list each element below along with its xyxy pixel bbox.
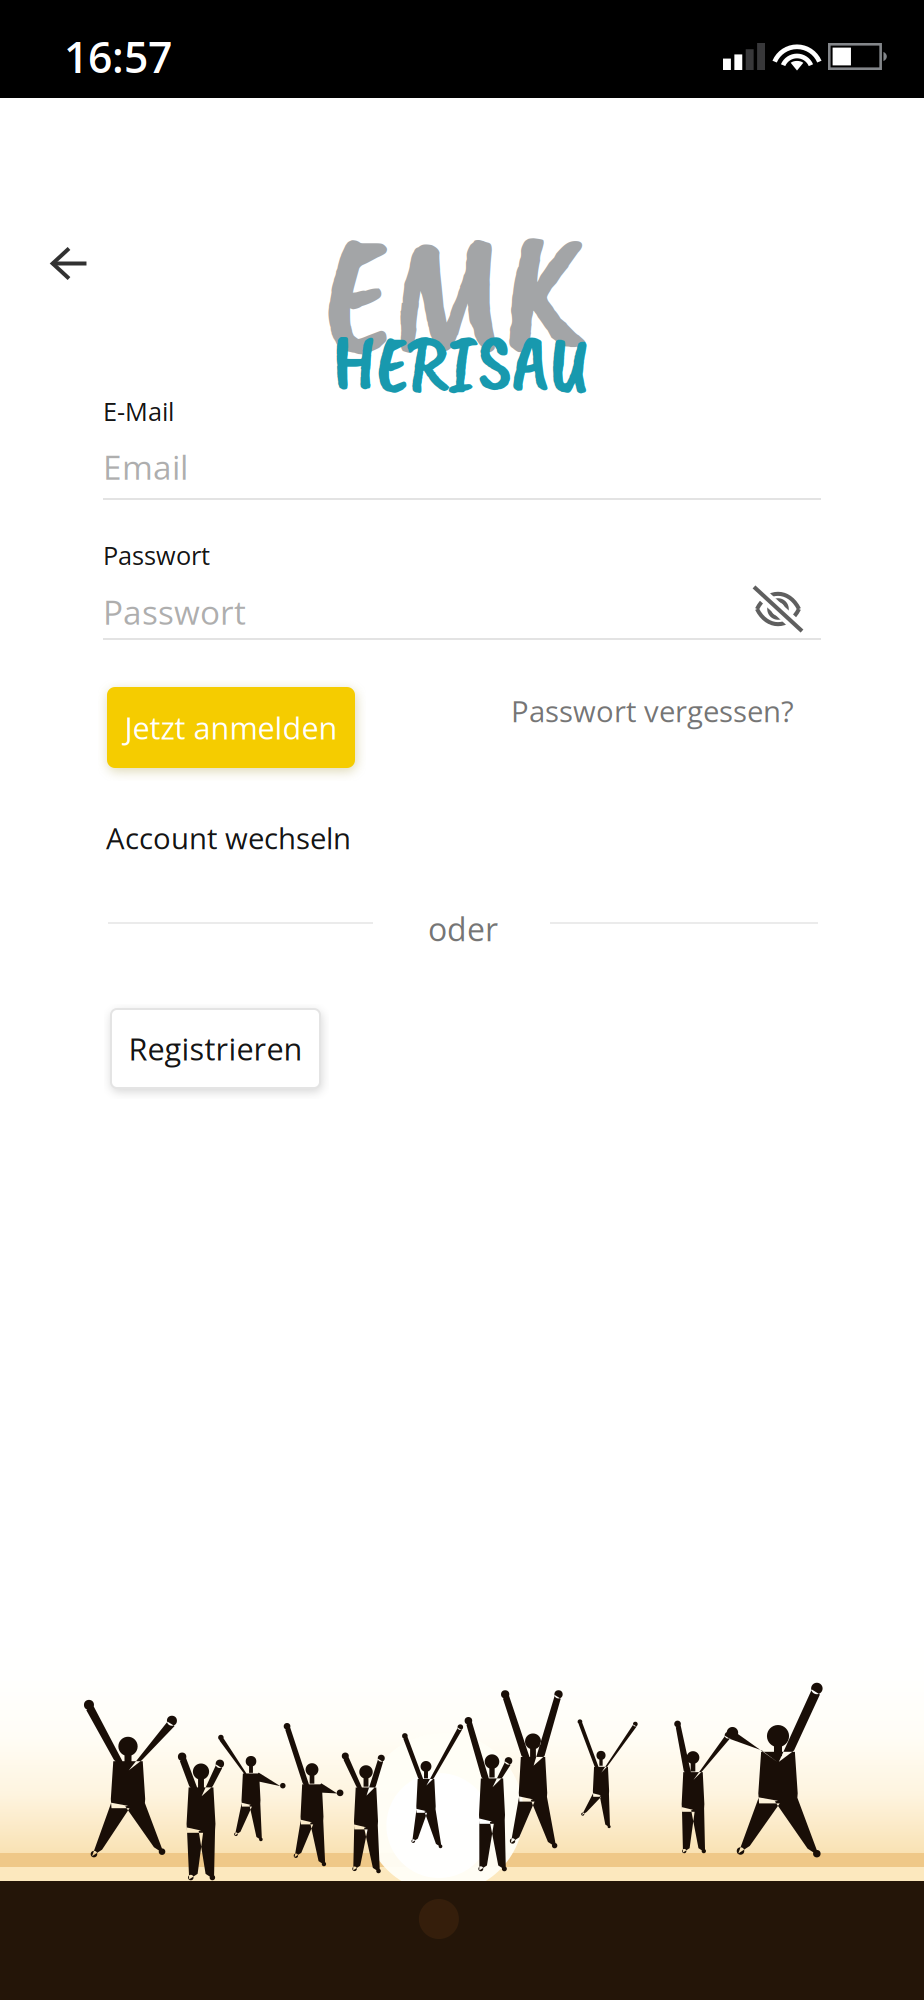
staticText: HERISAU xyxy=(332,313,590,414)
staticText: Jetzt anmelden xyxy=(124,707,337,748)
staticText: 16:57 xyxy=(64,27,172,85)
button[interactable]: Show password xyxy=(753,586,803,632)
staticText: Passwort vergessen? xyxy=(511,691,794,731)
button[interactable]: Passwort vergessen? xyxy=(511,691,794,731)
staticText: Passwort xyxy=(103,538,210,572)
button[interactable]: Back xyxy=(36,232,102,295)
staticText: EMK xyxy=(323,186,586,398)
staticText: Account wechseln xyxy=(106,818,351,858)
button[interactable]: Registrieren xyxy=(111,1009,320,1088)
staticText: Passwort xyxy=(103,589,246,634)
button[interactable]: Jetzt anmelden xyxy=(107,687,355,768)
staticText: E-Mail xyxy=(103,394,174,428)
button[interactable]: Account wechseln xyxy=(106,818,351,858)
staticText: Email xyxy=(103,444,188,489)
staticText: oder xyxy=(428,907,498,951)
staticText: Registrieren xyxy=(128,1028,302,1069)
